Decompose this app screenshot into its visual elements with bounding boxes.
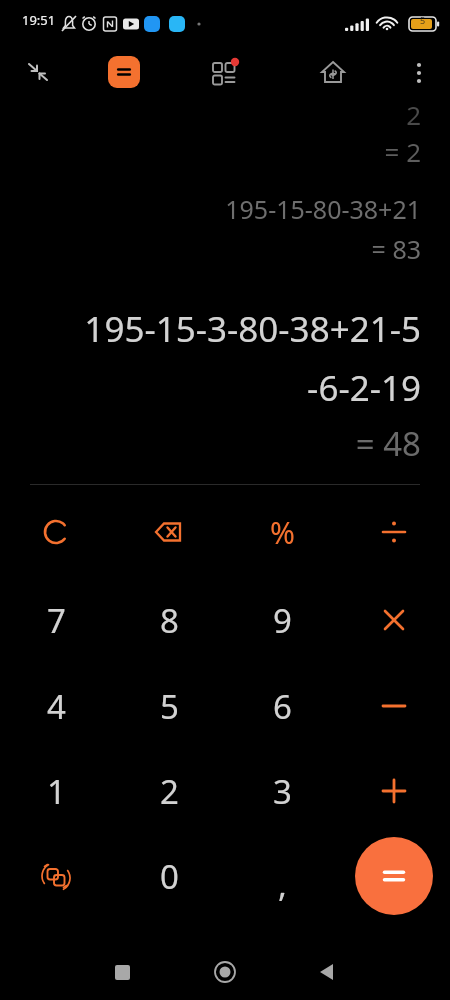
button[interactable]: More options xyxy=(399,53,439,93)
button[interactable]: % xyxy=(234,492,330,572)
button[interactable]: Home xyxy=(204,951,246,993)
staticText: 195-15-80-38+21 xyxy=(0,192,421,226)
button[interactable]: Backspace xyxy=(121,492,217,572)
staticText: 2 xyxy=(160,769,179,814)
button[interactable]: 7 xyxy=(8,580,104,660)
staticText: 6 xyxy=(273,684,292,729)
button[interactable]: Multiply xyxy=(346,580,442,660)
button[interactable]: Equals xyxy=(355,837,433,915)
staticText: 2 xyxy=(0,97,421,132)
button[interactable]: Convert units xyxy=(8,836,104,916)
button[interactable]: 5 xyxy=(121,666,217,746)
staticText: 195-15-3-80-38+21-5 xyxy=(30,305,421,353)
button[interactable]: Clear xyxy=(8,492,104,572)
button[interactable]: Divide xyxy=(346,492,442,572)
staticText: 3 xyxy=(273,769,292,814)
staticText: 19:51 xyxy=(22,11,56,29)
button[interactable]: , xyxy=(234,836,330,916)
button[interactable]: 3 xyxy=(234,751,330,831)
button[interactable]: 9 xyxy=(234,580,330,660)
button[interactable]: 0 xyxy=(121,836,217,916)
button[interactable]: 8 xyxy=(121,580,217,660)
button[interactable]: Plus xyxy=(346,751,442,831)
staticText: 4 xyxy=(47,684,66,729)
staticText: 5 xyxy=(420,14,426,26)
button[interactable]: 4 xyxy=(8,666,104,746)
staticText: , xyxy=(278,862,287,907)
staticText: 8 xyxy=(160,598,179,643)
button[interactable]: Calculator xyxy=(108,56,140,88)
staticText: 9 xyxy=(273,598,292,643)
staticText: = 83 xyxy=(0,232,421,266)
staticText: = 48 xyxy=(0,421,421,466)
button[interactable]: Collapse xyxy=(17,51,59,93)
button[interactable]: Currency xyxy=(313,53,353,93)
button[interactable]: 1 xyxy=(8,751,104,831)
button[interactable]: 6 xyxy=(234,666,330,746)
staticText: 1 xyxy=(47,769,66,814)
staticText: = 2 xyxy=(0,134,421,169)
staticText: -6-2-19 xyxy=(0,364,421,412)
button[interactable]: Minus xyxy=(346,666,442,746)
button[interactable]: 195-15-80-38+21 xyxy=(0,192,421,226)
button[interactable]: Modes xyxy=(205,53,245,93)
button[interactable]: 195-15-3-80-38+21-5 xyxy=(30,305,421,353)
staticText: 0 xyxy=(160,854,179,899)
staticText: 5 xyxy=(160,684,179,729)
staticText: % xyxy=(270,512,295,553)
staticText: 7 xyxy=(47,598,66,643)
button[interactable]: Recents xyxy=(101,951,143,993)
button[interactable]: Back xyxy=(306,951,348,993)
button[interactable]: 2 xyxy=(121,751,217,831)
